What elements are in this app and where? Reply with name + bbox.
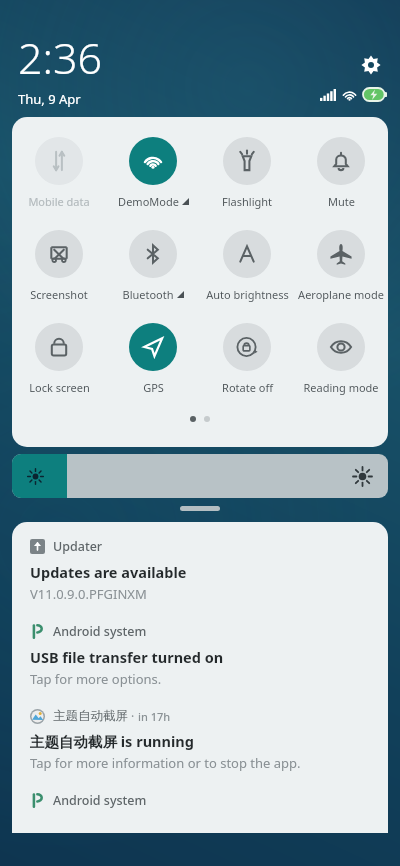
button[interactable]: Flashlight	[200, 137, 294, 209]
button[interactable]: Brightness	[12, 454, 388, 498]
button[interactable]: Rotate off	[200, 323, 294, 395]
staticText: Tap for more options.	[30, 670, 162, 688]
button[interactable]: Mute	[294, 137, 388, 209]
staticText: Updater	[53, 538, 103, 555]
staticText: Bluetooth	[122, 287, 174, 302]
staticText: ·	[128, 708, 138, 724]
button[interactable]: Mobile data	[12, 137, 106, 209]
staticText: Mute	[328, 194, 355, 209]
staticText: in 17h	[138, 709, 171, 724]
button[interactable]: Bluetooth	[106, 230, 200, 302]
button[interactable]: Reading mode	[294, 323, 388, 395]
staticText: Tap for more information or to stop the …	[30, 754, 301, 772]
staticText: DemoMode	[118, 194, 179, 209]
button[interactable]: Android system	[12, 623, 388, 688]
staticText: Android system	[53, 623, 147, 640]
staticText: 2:36	[18, 28, 103, 87]
button[interactable]: Aeroplane mode	[294, 230, 388, 302]
button[interactable]: Updater	[12, 538, 388, 603]
staticText: Mobile data	[28, 194, 90, 209]
button[interactable]: 主题自动截屏	[12, 708, 388, 772]
staticText: 主题自动截屏	[53, 708, 128, 724]
button[interactable]: Settings	[356, 50, 386, 80]
staticText: V11.0.9.0.PFGINXM	[30, 585, 147, 603]
staticText: GPS	[143, 380, 164, 395]
staticText: 主题自动截屏 is running	[30, 731, 194, 751]
staticText: Updates are available	[30, 562, 187, 582]
button[interactable]: Auto brightness	[200, 230, 294, 302]
button[interactable]: Android system	[12, 792, 388, 809]
staticText: Aeroplane mode	[298, 287, 384, 302]
staticText: Auto brightness	[206, 287, 289, 302]
staticText: Screenshot	[30, 287, 88, 302]
staticText: Lock screen	[29, 380, 90, 395]
button[interactable]: GPS	[106, 323, 200, 395]
staticText: Android system	[53, 792, 147, 809]
button[interactable]: DemoMode	[106, 137, 200, 209]
staticText: Rotate off	[222, 380, 273, 395]
button[interactable]: Screenshot	[12, 230, 106, 302]
staticText: Flashlight	[222, 194, 272, 209]
staticText: USB file transfer turned on	[30, 647, 224, 667]
button[interactable]: Lock screen	[12, 323, 106, 395]
staticText: Reading mode	[303, 380, 379, 395]
staticText: Thu, 9 Apr	[18, 90, 81, 108]
